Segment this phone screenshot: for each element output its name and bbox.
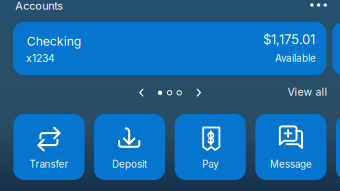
button[interactable]: Next account	[191, 85, 207, 101]
staticText: Accounts	[15, 0, 63, 12]
button[interactable]: Previous account	[133, 85, 149, 101]
staticText: Pay	[202, 158, 218, 170]
staticText: Available	[275, 52, 316, 64]
staticText: Message	[270, 158, 312, 170]
staticText: $1,175.01	[263, 31, 315, 47]
button[interactable]: Transfer	[13, 114, 84, 180]
staticText: Deposit	[112, 158, 147, 170]
staticText: View all	[287, 86, 327, 98]
button[interactable]: Checking	[13, 22, 326, 75]
button[interactable]: Pay	[175, 114, 246, 180]
staticText: Transfer	[29, 158, 68, 170]
button[interactable]: Message	[255, 114, 326, 180]
staticText: Checking	[27, 34, 82, 49]
staticText: x1234	[26, 52, 55, 64]
button[interactable]: View all	[285, 84, 329, 100]
button[interactable]: Deposit	[94, 114, 165, 180]
button[interactable]: More options	[304, 0, 334, 13]
